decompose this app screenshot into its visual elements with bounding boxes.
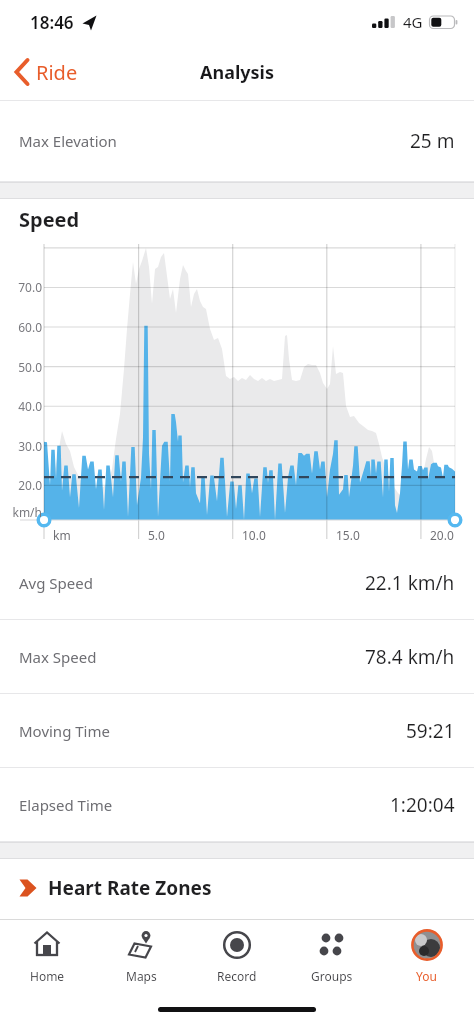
staticText: km: [53, 527, 71, 543]
staticText: Speed: [19, 206, 80, 233]
staticText: Moving Time: [19, 721, 110, 741]
staticText: Elapsed Time: [19, 795, 113, 815]
button[interactable]: Home: [0, 920, 94, 990]
staticText: 20.0: [430, 527, 454, 543]
staticText: 30.0: [6, 438, 42, 454]
staticText: 20.0: [6, 477, 42, 493]
staticText: 78.4 km/h: [365, 644, 455, 670]
staticText: 10.0: [242, 527, 266, 543]
staticText: Home: [30, 968, 65, 984]
button[interactable]: Record: [189, 920, 284, 990]
staticText: 60.0: [6, 319, 42, 335]
staticText: Record: [217, 968, 257, 984]
staticText: Heart Rate Zones: [48, 875, 212, 901]
staticText: You: [416, 968, 437, 984]
staticText: 5.0: [148, 527, 165, 543]
staticText: Ride: [36, 59, 78, 86]
button[interactable]: Ride: [12, 58, 78, 86]
staticText: Avg Speed: [19, 573, 93, 593]
button[interactable]: Groups: [284, 920, 379, 990]
staticText: 22.1 km/h: [365, 570, 455, 596]
staticText: km/h: [6, 504, 42, 520]
staticText: 4G: [403, 12, 423, 32]
staticText: 70.0: [6, 279, 42, 295]
staticText: 59:21: [406, 718, 455, 744]
button[interactable]: Maps: [94, 920, 189, 990]
staticText: 50.0: [6, 359, 42, 375]
staticText: 15.0: [336, 527, 360, 543]
staticText: 25 m: [410, 128, 455, 154]
button[interactable]: Heart Rate Zones: [19, 859, 455, 917]
button[interactable]: You: [379, 920, 474, 990]
staticText: Groups: [311, 968, 353, 984]
staticText: Maps: [126, 968, 157, 984]
staticText: Max Elevation: [19, 131, 117, 151]
staticText: Analysis: [200, 60, 275, 85]
staticText: 18:46: [30, 11, 74, 34]
staticText: 40.0: [6, 398, 42, 414]
staticText: Max Speed: [19, 647, 97, 667]
staticText: 1:20:04: [390, 792, 455, 818]
